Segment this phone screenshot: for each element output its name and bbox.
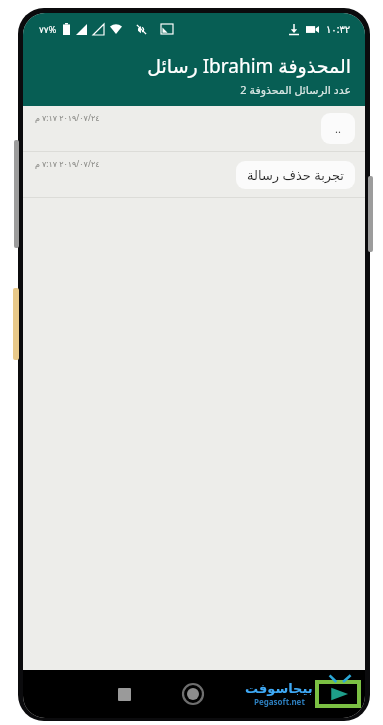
staticText: Pegasoft.net	[254, 696, 305, 707]
button[interactable]: ٢٠١٩/٠٧/٢٤ ٧:١٧ م	[23, 152, 365, 197]
button[interactable]: ٢٠١٩/٠٧/٢٤ ٧:١٧ م	[23, 106, 365, 151]
staticText: ..	[335, 121, 341, 136]
button[interactable]: Back	[317, 682, 359, 706]
staticText: ١٠:٣٢	[326, 22, 351, 36]
staticText: ٢٠١٩/٠٧/٢٤ ٧:١٧ م	[35, 112, 100, 123]
staticText: بيجاسوفت	[245, 681, 313, 696]
button[interactable]: Home	[177, 678, 209, 710]
staticText: ٧٧%	[39, 23, 57, 35]
staticText: تجربة حذف رسالة	[247, 166, 344, 184]
staticText: عدد الرسائل المحذوفة 2	[240, 82, 351, 97]
button[interactable]: Recent apps	[109, 679, 139, 709]
staticText: ٢٠١٩/٠٧/٢٤ ٧:١٧ م	[35, 158, 100, 169]
staticText: رسائل Ibrahim المحذوفة	[147, 53, 351, 79]
button[interactable]: رسائل Ibrahim المحذوفة	[23, 44, 365, 106]
